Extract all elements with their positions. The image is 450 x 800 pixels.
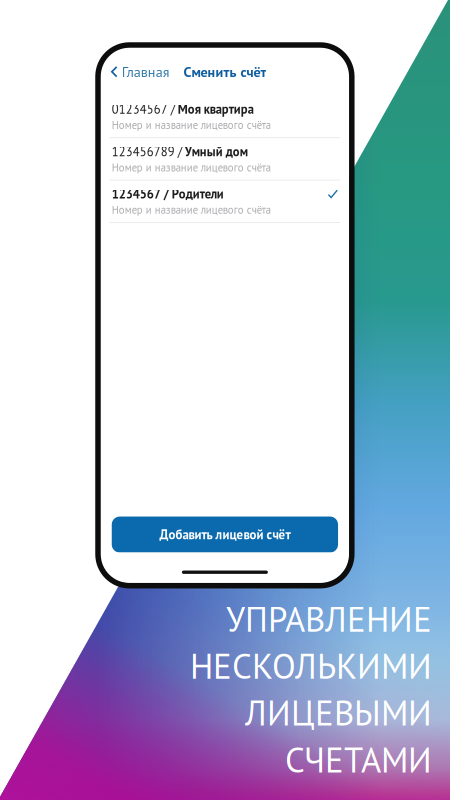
staticText: 1234567 <box>112 186 161 202</box>
staticText: УПРАВЛЕНИЕ <box>226 597 432 641</box>
button[interactable]: Добавить лицевой счёт <box>112 517 338 553</box>
staticText: Номер и название лицевого счёта <box>112 161 271 174</box>
staticText: / <box>161 186 172 202</box>
staticText: Сменить счёт <box>183 63 266 81</box>
staticText: Родители <box>172 186 224 202</box>
staticText: Номер и название лицевого счёта <box>112 118 271 132</box>
staticText: Моя квартира <box>178 101 254 117</box>
staticText: 123456789 <box>112 143 175 160</box>
staticText: / <box>175 143 185 160</box>
staticText: ЛИЦЕВЫМИ <box>245 690 432 735</box>
button[interactable]: 1234567 <box>101 180 349 222</box>
staticText: СЧЕТАМИ <box>285 737 432 782</box>
staticText: 01234567 <box>112 101 168 117</box>
staticText: Главная <box>122 63 170 81</box>
staticText: Умный дом <box>185 143 248 160</box>
button[interactable]: 01234567 <box>101 96 349 137</box>
button[interactable]: Главная <box>101 59 180 85</box>
staticText: / <box>168 101 178 117</box>
staticText: Добавить лицевой счёт <box>159 526 290 543</box>
staticText: НЕСКОЛЬКИМИ <box>190 643 432 688</box>
button[interactable]: 123456789 <box>101 138 349 180</box>
staticText: Номер и название лицевого счёта <box>112 203 271 217</box>
